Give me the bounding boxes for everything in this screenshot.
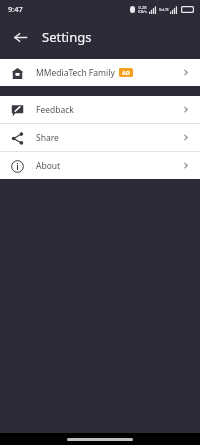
- button[interactable]: Feedback: [0, 96, 200, 123]
- staticText: AD: [122, 69, 130, 76]
- staticText: Settings: [42, 28, 92, 46]
- staticText: 9:47: [8, 4, 23, 14]
- staticText: About: [36, 160, 61, 172]
- button[interactable]: About: [0, 152, 200, 179]
- staticText: Share: [36, 132, 59, 144]
- button[interactable]: MMediaTech Family: [0, 59, 200, 86]
- staticText: VoLTE: [159, 7, 169, 12]
- staticText: 0.28 KB/s: [138, 5, 147, 14]
- staticText: Feedback: [36, 104, 74, 116]
- staticText: MMediaTech Family: [36, 67, 115, 79]
- button[interactable]: Back: [6, 23, 34, 51]
- button[interactable]: Share: [0, 124, 200, 151]
